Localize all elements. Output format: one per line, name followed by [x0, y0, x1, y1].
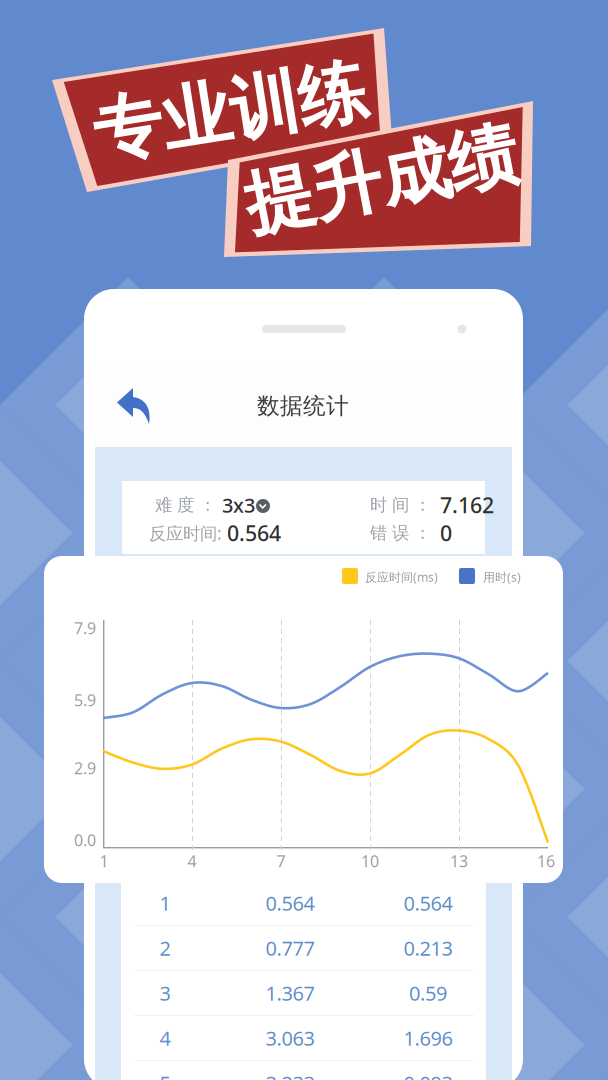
staticText: 用时(s): [483, 569, 521, 585]
staticText: 错 误 ：: [370, 522, 431, 544]
staticText: 数据统计: [257, 392, 349, 420]
staticText: 5: [159, 1070, 170, 1080]
staticText: 7: [276, 850, 285, 872]
staticText: 0.0: [74, 829, 96, 851]
button[interactable]: 1: [121, 881, 486, 926]
staticText: 4: [187, 850, 196, 872]
staticText: 0.564: [265, 890, 314, 916]
staticText: 3.063: [265, 1025, 314, 1051]
button[interactable]: 5: [121, 1061, 486, 1080]
staticText: 3: [159, 980, 170, 1006]
staticText: 0.564: [227, 519, 281, 547]
staticText: 3x3: [222, 492, 255, 518]
staticText: 2.9: [74, 757, 96, 779]
staticText: 1.696: [403, 1025, 452, 1051]
staticText: 反应时间(ms): [365, 569, 438, 585]
staticText: 0.093: [403, 1070, 452, 1080]
staticText: 反应时间:: [149, 521, 222, 544]
staticText: 0.564: [403, 890, 452, 916]
staticText: 1: [159, 890, 170, 916]
staticText: 7.9: [74, 617, 96, 639]
staticText: 0.777: [265, 935, 314, 961]
staticText: 0.59: [409, 980, 447, 1006]
staticText: 0.213: [403, 935, 452, 961]
staticText: 7.162: [440, 491, 494, 519]
staticText: 10: [361, 850, 379, 872]
staticText: 2: [159, 935, 170, 961]
button[interactable]: 4: [121, 1016, 486, 1061]
staticText: 13: [450, 850, 468, 872]
staticText: 4: [159, 1025, 170, 1051]
staticText: 专业训练: [92, 69, 368, 155]
staticText: 时 间 ：: [370, 494, 431, 516]
staticText: 16: [537, 850, 555, 872]
staticText: 1.367: [265, 980, 314, 1006]
button[interactable]: Back: [106, 376, 162, 436]
staticText: 提升成绩: [243, 137, 519, 223]
button[interactable]: 3: [121, 971, 486, 1016]
staticText: 0: [440, 519, 452, 547]
staticText: 1: [99, 850, 108, 872]
staticText: 3.233: [265, 1070, 314, 1080]
staticText: 难 度 ：: [155, 494, 216, 516]
staticText: 5.9: [74, 689, 96, 711]
button[interactable]: 2: [121, 926, 486, 971]
